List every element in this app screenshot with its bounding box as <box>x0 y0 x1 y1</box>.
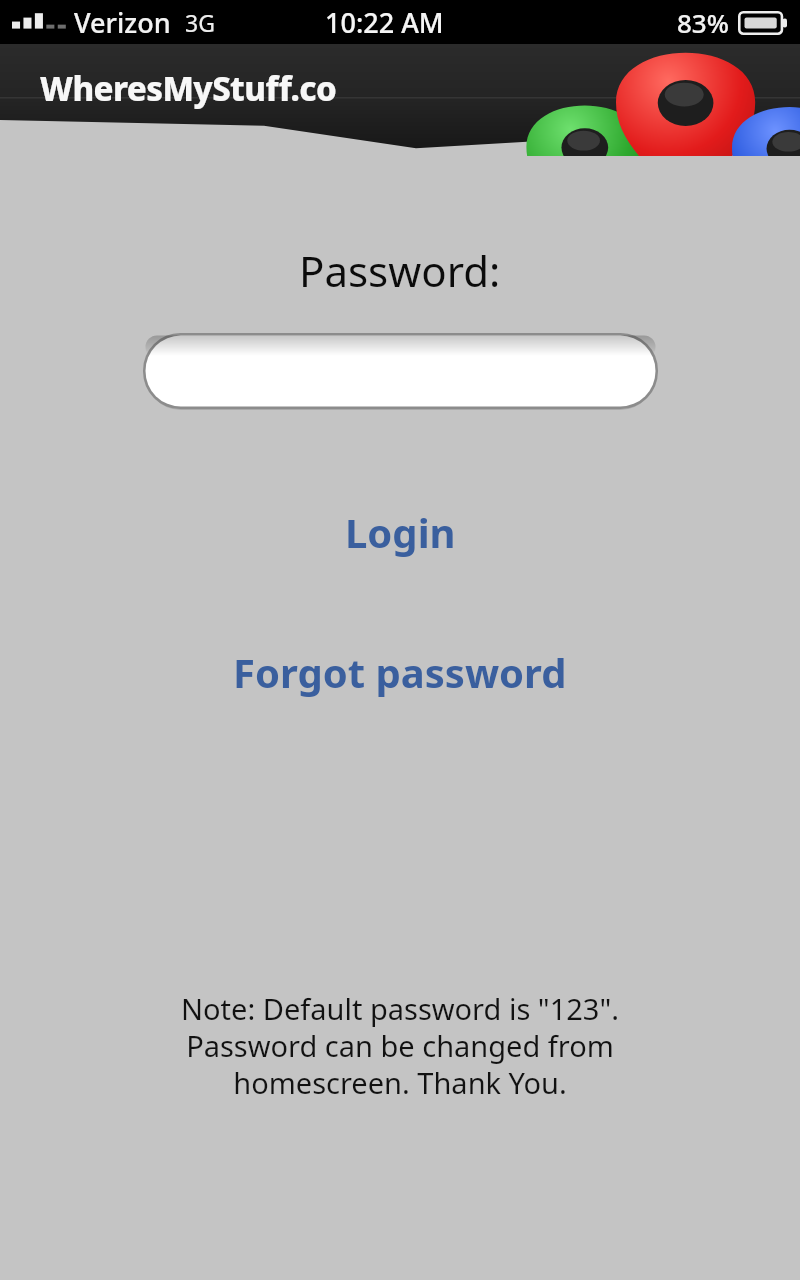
staticText: WheresMyStuff.co <box>40 66 337 111</box>
staticText: 3G <box>185 7 215 38</box>
staticText: Forgot password <box>233 645 567 699</box>
button[interactable]: Password entry field <box>143 333 658 409</box>
staticText: Note: Default password is "123". Passwor… <box>24 989 776 1103</box>
staticText: Password: <box>299 242 501 299</box>
button[interactable]: Forgot password <box>207 635 593 709</box>
staticText: Login <box>345 505 456 559</box>
staticText: Verizon <box>74 4 171 41</box>
staticText: 83% <box>677 5 729 40</box>
button[interactable]: Login <box>319 495 482 569</box>
staticText: 10:22 AM <box>325 4 444 41</box>
